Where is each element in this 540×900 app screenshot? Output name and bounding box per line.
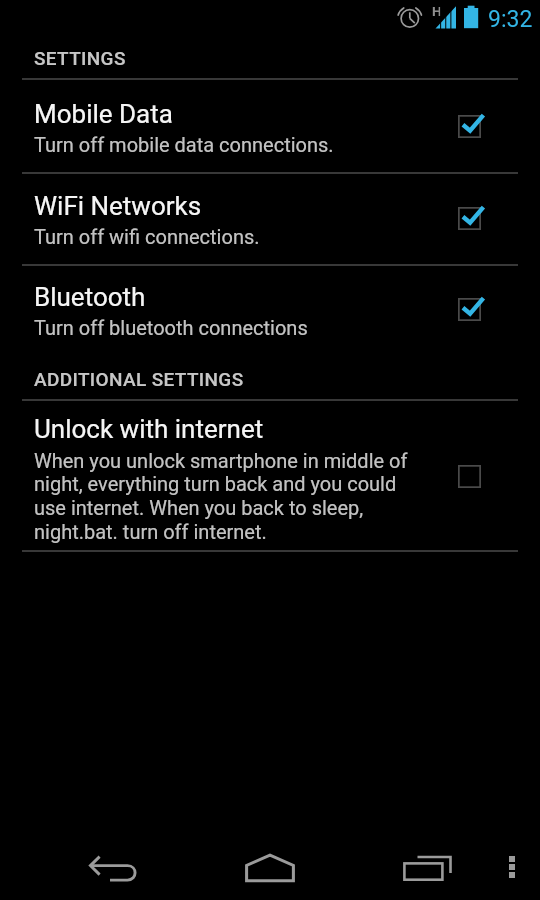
- button[interactable]: Unlock with internet: [0, 401, 540, 550]
- staticText: Turn off mobile data connections.: [34, 133, 334, 156]
- button[interactable]: Checked, toggle setting: [445, 102, 493, 150]
- staticText: When you unlock smartphone in middle of …: [34, 449, 424, 543]
- button[interactable]: Mobile Data: [0, 80, 540, 172]
- staticText: Mobile Data: [34, 99, 173, 129]
- staticText: WiFi Networks: [34, 191, 202, 221]
- button[interactable]: Home: [210, 836, 330, 900]
- staticText: Turn off wifi connections.: [34, 225, 260, 248]
- button[interactable]: Back: [49, 856, 169, 882]
- button[interactable]: ADDITIONAL SETTINGS: [0, 355, 540, 399]
- button[interactable]: WiFi Networks: [0, 174, 540, 264]
- button[interactable]: Bluetooth: [0, 266, 540, 351]
- button[interactable]: More options: [486, 835, 538, 899]
- button[interactable]: Checked, toggle setting: [445, 194, 493, 242]
- staticText: SETTINGS: [34, 47, 126, 69]
- button[interactable]: Unchecked, toggle setting: [445, 452, 493, 500]
- staticText: Bluetooth: [34, 282, 146, 312]
- staticText: Unlock with internet: [34, 414, 264, 444]
- button[interactable]: SETTINGS: [0, 40, 540, 78]
- button[interactable]: Checked, toggle setting: [445, 285, 493, 333]
- button[interactable]: Recent apps: [375, 848, 485, 880]
- staticText: Turn off bluetooth connections: [34, 316, 308, 339]
- staticText: ADDITIONAL SETTINGS: [34, 368, 244, 390]
- staticText: H: [432, 3, 442, 19]
- staticText: 9:32: [488, 6, 533, 33]
